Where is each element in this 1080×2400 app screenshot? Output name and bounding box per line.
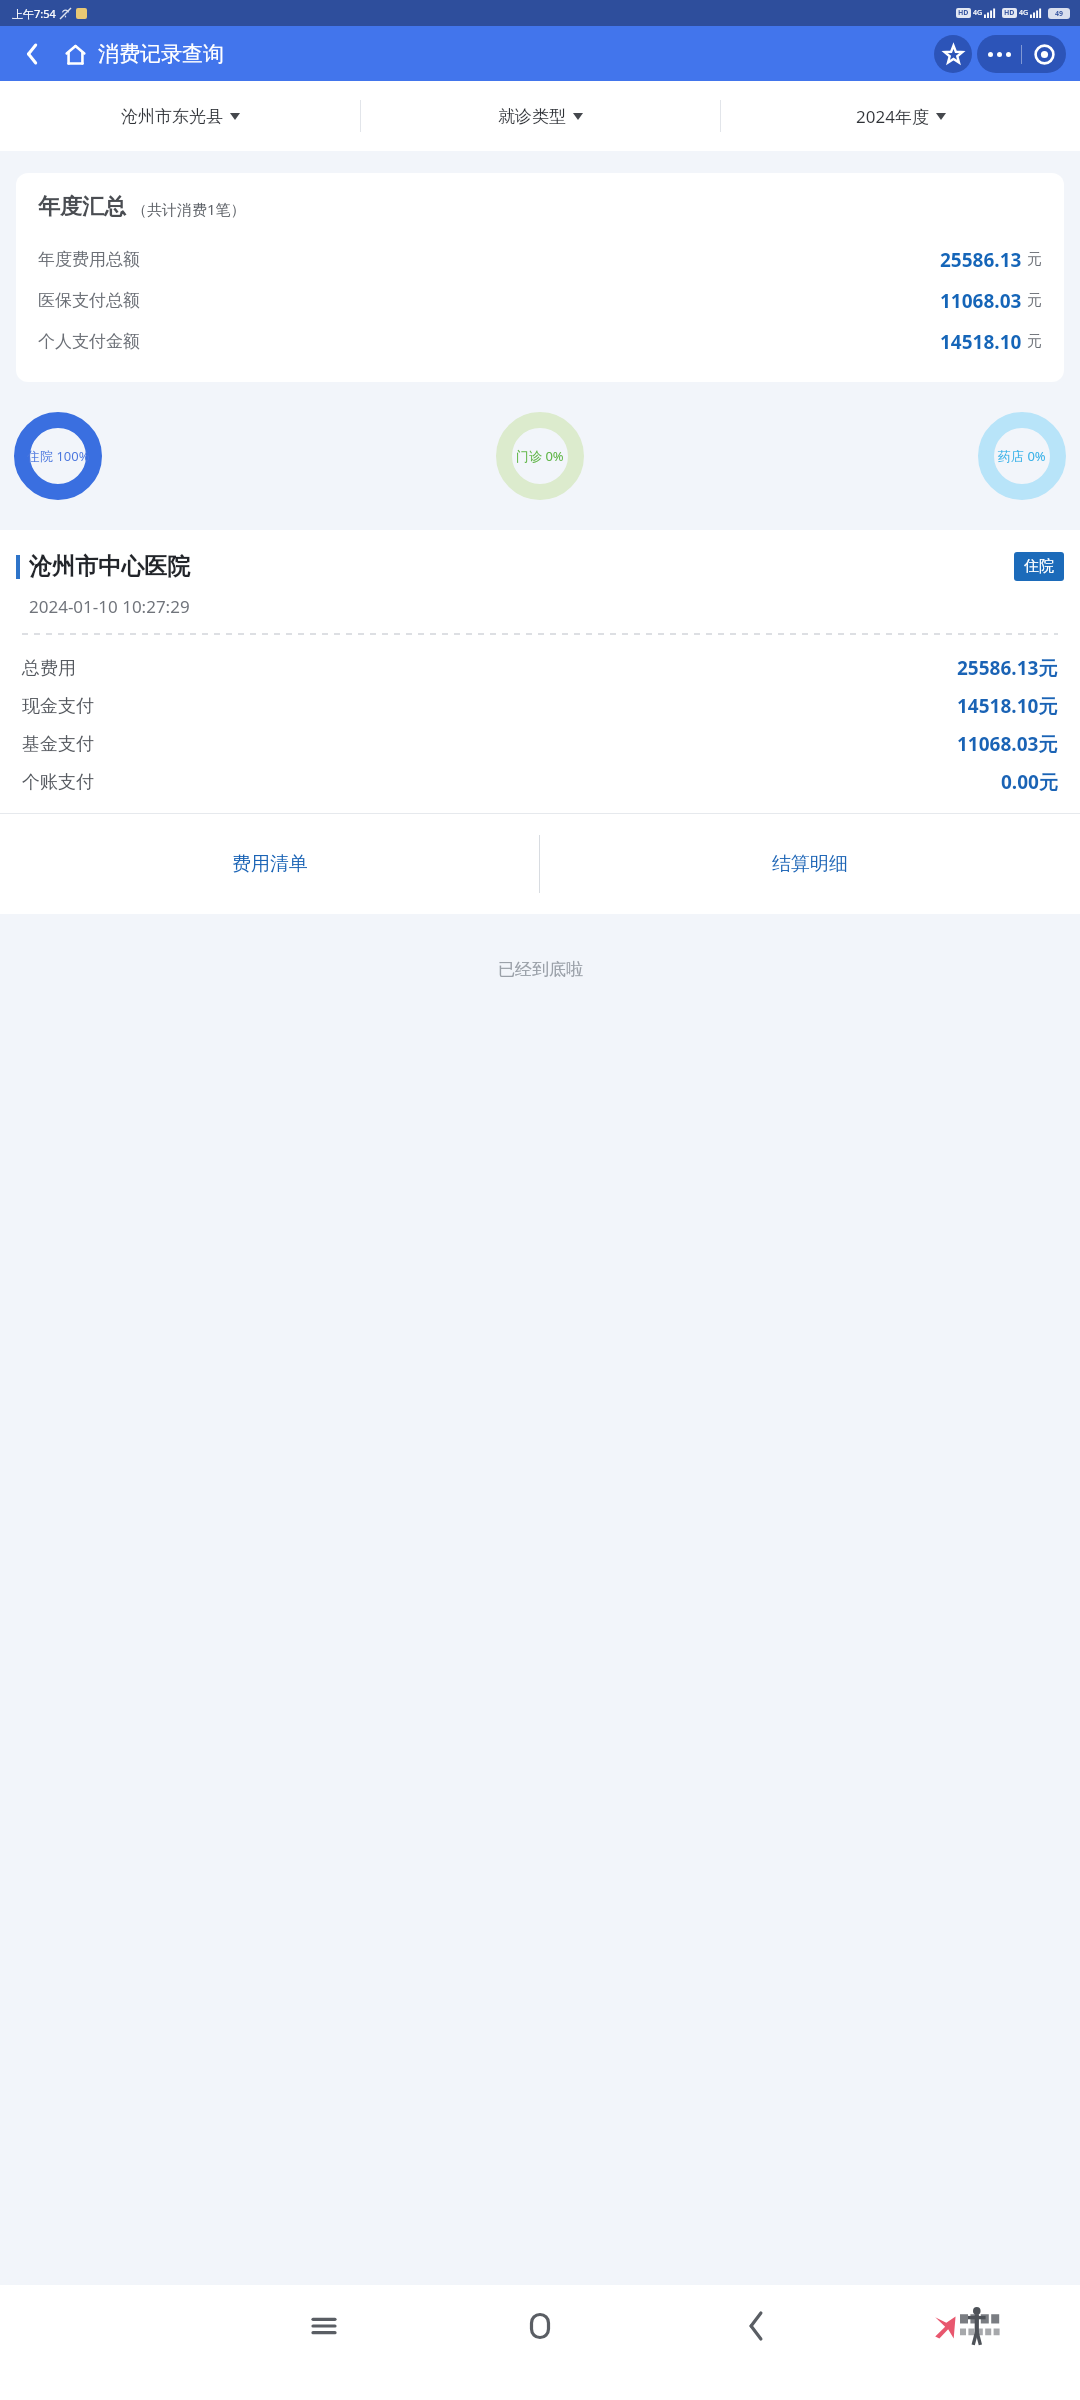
staticText: 11068.03元 <box>957 731 1058 757</box>
button[interactable]: Back <box>16 37 50 71</box>
staticText: 25586.13 <box>940 247 1022 273</box>
staticText: 上午7:54 <box>12 6 56 21</box>
button[interactable]: More <box>977 35 1021 73</box>
staticText: 消费记录查询 <box>98 41 224 67</box>
button[interactable]: 结算明细 <box>540 814 1080 914</box>
staticText: 年度费用总额 <box>38 249 140 270</box>
staticText: 2024-01-10 10:27:29 <box>29 595 190 618</box>
staticText: 0.00元 <box>1001 769 1058 795</box>
staticText: 4G <box>973 8 983 18</box>
staticText: 沧州市东光县 <box>121 106 223 127</box>
button[interactable]: Close <box>1022 35 1066 73</box>
staticText: 结算明细 <box>772 852 848 876</box>
staticText: 25586.13元 <box>957 655 1058 681</box>
staticText: 2024年度 <box>856 105 929 128</box>
button[interactable]: 住院 <box>1014 552 1064 581</box>
staticText: 年度汇总 <box>38 193 126 221</box>
staticText: 元 <box>1027 332 1042 351</box>
staticText: 49 <box>1055 9 1064 19</box>
button[interactable]: 2024年度 <box>721 81 1080 151</box>
staticText: HD <box>1004 8 1015 18</box>
button[interactable]: 门诊 0% <box>496 412 584 500</box>
staticText: 住院 <box>1024 557 1054 576</box>
staticText: 14518.10元 <box>957 693 1058 719</box>
staticText: HD <box>958 8 969 18</box>
staticText: （共计消费1笔） <box>132 199 246 219</box>
staticText: 11068.03 <box>940 288 1022 314</box>
staticText: 元 <box>1027 291 1042 310</box>
button[interactable]: Recents <box>216 2291 432 2361</box>
staticText: 就诊类型 <box>498 106 566 127</box>
staticText: 总费用 <box>22 657 76 680</box>
button[interactable]: Back <box>648 2291 864 2361</box>
staticText: 元 <box>1027 250 1042 269</box>
staticText: 沧州市中心医院 <box>29 552 190 581</box>
staticText: 4G <box>1019 8 1029 18</box>
button[interactable]: 住院 100% <box>14 412 102 500</box>
staticText: 药店 0% <box>998 447 1046 465</box>
staticText: 门诊 0% <box>516 447 564 465</box>
staticText: 个人支付金额 <box>38 331 140 352</box>
staticText: 现金支付 <box>22 695 94 718</box>
staticText: 费用清单 <box>232 852 308 876</box>
staticText: 已经到底啦 <box>498 959 583 980</box>
staticText: 住院 100% <box>27 447 90 465</box>
button[interactable]: Home <box>58 37 92 71</box>
button[interactable]: 药店 0% <box>978 412 1066 500</box>
button[interactable]: 就诊类型 <box>361 81 720 151</box>
button[interactable]: 沧州市东光县 <box>0 81 360 151</box>
staticText: 医保支付总额 <box>38 290 140 311</box>
staticText: 个账支付 <box>22 771 94 794</box>
staticText: 14518.10 <box>940 329 1022 355</box>
staticText: 基金支付 <box>22 733 94 756</box>
button[interactable]: Favorite <box>934 35 972 73</box>
button[interactable]: 费用清单 <box>0 814 539 914</box>
button[interactable]: Home <box>432 2291 648 2361</box>
